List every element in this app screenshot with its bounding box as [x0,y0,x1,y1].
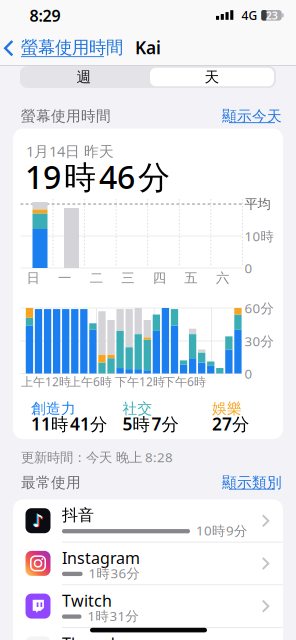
staticText: 顯示類別 [222,473,282,491]
staticText: 三 [121,270,134,286]
staticText: 11時 41分 [31,412,107,435]
staticText: 8:29 [29,5,60,26]
staticText: 23 [266,8,278,22]
button[interactable]: 顯示類別 [227,474,277,492]
staticText: 5時 7分 [122,412,178,435]
staticText: 1月14日 昨天 [26,141,114,161]
button[interactable]: Twitch [13,585,283,627]
staticText: 0 [244,365,252,382]
staticText: ♪ [33,511,44,531]
button[interactable]: 週 [21,66,147,88]
staticText: 下午6時 [163,373,206,389]
staticText: 顯示今天 [222,107,282,125]
staticText: 4G [241,7,257,23]
staticText: 五 [184,270,197,286]
staticText: Twitch [62,590,112,611]
staticText: 抖音 [62,505,94,525]
staticText: 下午12時 [115,373,165,389]
staticText: 27分 [212,412,249,435]
staticText: ♪ [32,510,43,530]
staticText: 10時 [244,227,273,245]
staticText: 創造力 [31,399,76,417]
button[interactable]: 天 [149,66,275,88]
staticText: ♪ [32,511,43,531]
staticText: 社交 [122,399,152,417]
button[interactable]: 顯示今天 [227,107,277,125]
staticText: 一 [58,270,71,286]
staticText: 四 [153,270,166,286]
staticText: 0 [244,259,252,277]
staticText: 日 [26,270,39,286]
staticText: 二 [90,270,103,286]
staticText: Instagram [62,547,140,568]
staticText: 更新時間：今天 晚上 8:28 [21,448,173,466]
button[interactable]: 螢幕使用時間 [0,33,132,63]
staticText: 最常使用 [21,473,81,491]
staticText: Threads [62,633,123,640]
staticText: 10時 9分 [196,521,247,539]
staticText: 19 時 46 分 [25,155,170,198]
staticText: 天 [204,68,219,86]
staticText: 六 [216,270,229,286]
staticText: 60分 [244,299,273,317]
staticText: 上午6時 [69,373,112,389]
staticText: 上午12時 [21,373,71,389]
staticText: 螢幕使用時間 [21,107,111,125]
staticText: 平均 [244,196,270,212]
staticText: 螢幕使用時間 [21,37,123,58]
staticText: 1時 36分 [89,564,140,582]
staticText: 週 [76,68,91,86]
button[interactable]: ♪ [13,499,283,542]
button[interactable]: Instagram [13,542,283,585]
staticText: 30分 [244,332,273,350]
staticText: 娛樂 [212,399,242,417]
staticText: Kai [135,36,161,59]
button[interactable]: Threads [13,627,283,640]
staticText: 1時 31分 [87,607,138,625]
